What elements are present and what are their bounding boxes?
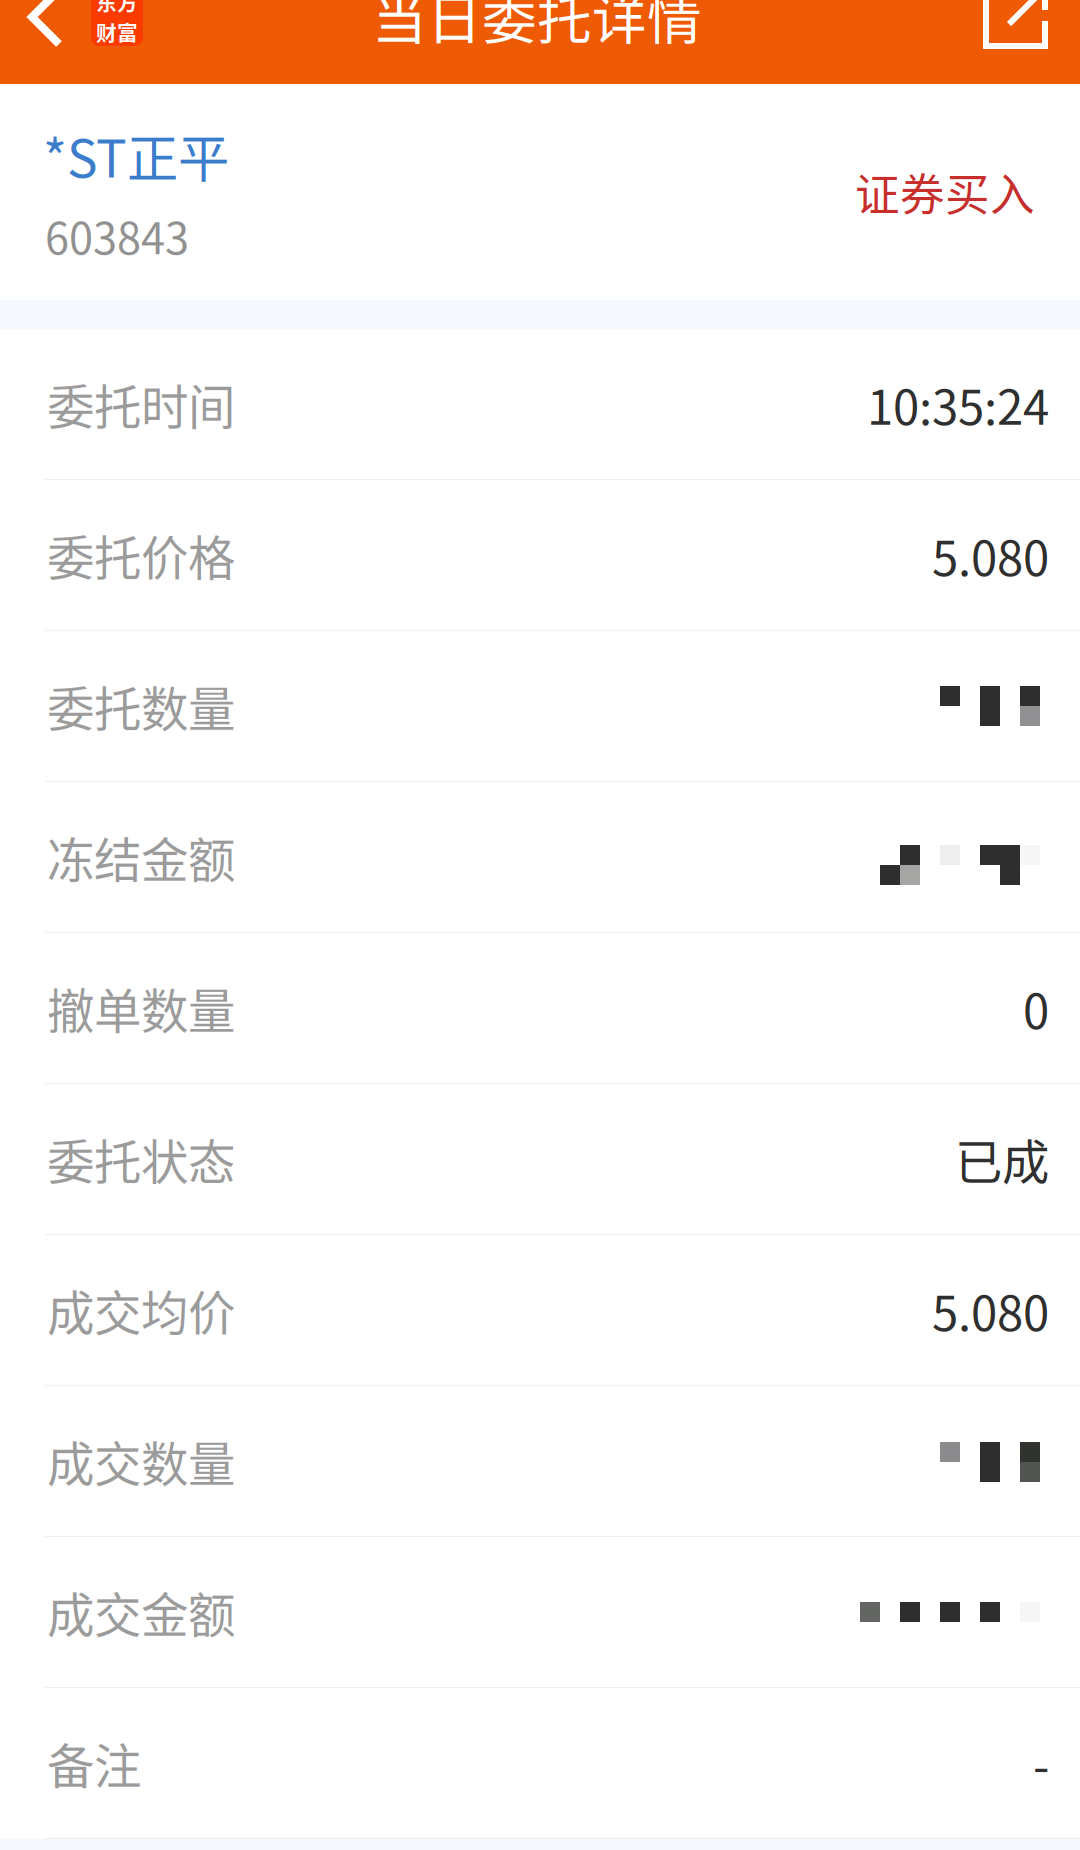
staticText: 当日委托详情 <box>372 0 702 55</box>
staticText: 成交数量 <box>47 1427 235 1495</box>
staticText: 财富 <box>96 17 138 47</box>
staticText: 成交均价 <box>47 1276 235 1344</box>
staticText: 委托数量 <box>47 672 235 740</box>
staticText: 委托时间 <box>47 370 235 438</box>
button[interactable]: 委托价格 <box>0 480 1080 631</box>
button[interactable]: Back <box>27 0 64 44</box>
button[interactable]: 备注 <box>0 1688 1080 1839</box>
staticText: 证券买入 <box>855 159 1035 224</box>
button[interactable]: 成交均价 <box>0 1235 1080 1386</box>
staticText: 5.080 <box>932 1276 1049 1344</box>
staticText: 已成 <box>955 1125 1049 1193</box>
button[interactable]: Share <box>983 0 1051 50</box>
staticText: - <box>1033 1729 1049 1797</box>
staticText: 冻结金额 <box>47 823 235 891</box>
staticText: 10:35:24 <box>867 370 1049 438</box>
staticText: *ST正平 <box>43 118 229 192</box>
button[interactable]: 委托数量 <box>0 631 1080 782</box>
button[interactable]: 成交金额 <box>0 1537 1080 1688</box>
staticText: 东方 <box>96 0 138 17</box>
staticText: 备注 <box>47 1729 141 1797</box>
button[interactable]: 撤单数量 <box>0 933 1080 1084</box>
staticText: 成交金额 <box>47 1578 235 1646</box>
button[interactable]: 委托状态 <box>0 1084 1080 1235</box>
button[interactable]: 冻结金额 <box>0 782 1080 933</box>
staticText: 撤单数量 <box>47 974 235 1042</box>
staticText: 603843 <box>45 204 189 267</box>
staticText: 委托价格 <box>47 521 235 589</box>
button[interactable]: 成交数量 <box>0 1386 1080 1537</box>
staticText: 0 <box>1023 974 1049 1042</box>
staticText: 委托状态 <box>47 1125 235 1193</box>
button[interactable]: 委托时间 <box>0 329 1080 480</box>
staticText: 5.080 <box>932 521 1049 589</box>
